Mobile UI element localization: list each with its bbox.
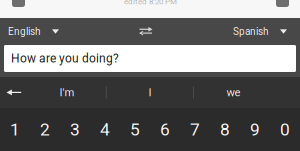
staticText: 3 [70, 119, 80, 140]
button[interactable]: we [194, 77, 273, 108]
staticText: I [148, 86, 151, 99]
staticText: 4 [100, 119, 110, 140]
staticText: 0 [280, 119, 290, 140]
staticText: 6 [160, 119, 170, 140]
staticText: edited 8:20 PM [124, 0, 177, 6]
button[interactable]: 0 [270, 108, 300, 151]
button[interactable]: Spanish [233, 18, 287, 45]
staticText: I'm [59, 86, 74, 99]
button[interactable]: I'm [28, 77, 106, 108]
button[interactable]: 9 [240, 108, 270, 151]
button[interactable]: 3 [60, 108, 90, 151]
button[interactable]: Swap languages [131, 18, 161, 45]
button[interactable]: I [107, 77, 193, 108]
button[interactable]: Back [0, 77, 28, 108]
button[interactable]: 4 [90, 108, 120, 151]
staticText: 2 [40, 119, 50, 140]
staticText: Spanish [233, 26, 269, 37]
button[interactable]: 1 [0, 108, 30, 151]
staticText: 7 [190, 119, 200, 140]
button[interactable]: 5 [120, 108, 150, 151]
button[interactable]: 2 [30, 108, 60, 151]
staticText: 8 [220, 119, 230, 140]
staticText: 5 [130, 119, 140, 140]
staticText: 9 [250, 119, 260, 140]
button[interactable]: How are you doing? [0, 45, 300, 72]
button[interactable]: English [8, 18, 59, 45]
staticText: 1 [10, 119, 20, 140]
staticText: English [8, 26, 41, 37]
button[interactable]: 6 [150, 108, 180, 151]
button[interactable]: 7 [180, 108, 210, 151]
button[interactable]: 8 [210, 108, 240, 151]
staticText: How are you doing? [11, 51, 119, 66]
staticText: we [226, 86, 240, 99]
